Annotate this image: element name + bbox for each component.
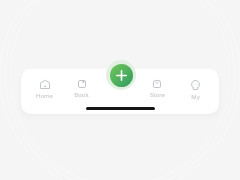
staticText: Home	[36, 92, 53, 100]
staticText: Store	[150, 91, 165, 99]
staticText: Book	[74, 91, 89, 99]
button[interactable]: Book	[63, 69, 100, 114]
button[interactable]: Store	[138, 69, 176, 114]
button[interactable]: My	[176, 69, 214, 114]
button[interactable]: Home	[26, 69, 63, 114]
staticText: My	[191, 93, 200, 101]
button[interactable]: Add	[106, 60, 136, 90]
